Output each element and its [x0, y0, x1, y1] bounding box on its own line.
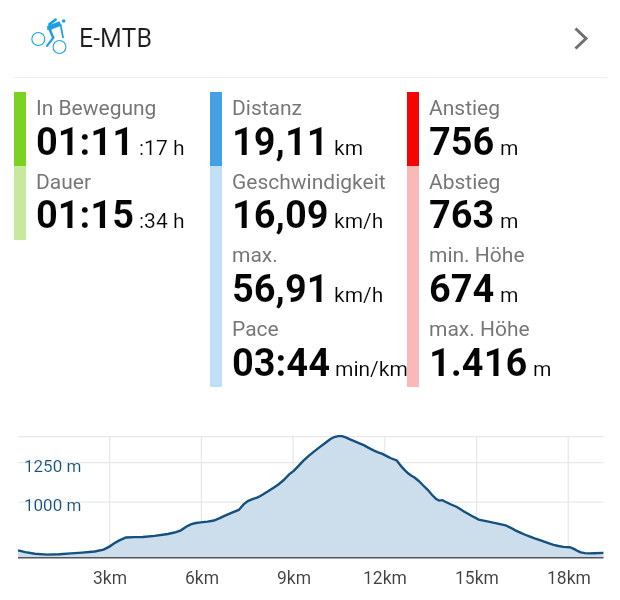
staticText: m — [500, 283, 519, 308]
staticText: Distanz — [232, 96, 303, 121]
button[interactable] — [36, 92, 216, 166]
button[interactable] — [429, 166, 609, 240]
staticText: max. Höhe — [429, 317, 530, 342]
button[interactable] — [232, 313, 412, 387]
staticText: 1250 m — [24, 456, 82, 476]
staticText: 756 — [429, 120, 495, 165]
staticText: max. — [232, 243, 278, 268]
staticText: km/h — [334, 209, 384, 234]
staticText: 1000 m — [24, 495, 82, 515]
staticText: 56,91 — [232, 267, 329, 312]
button[interactable] — [232, 166, 412, 240]
staticText: Geschwindigkeit — [232, 170, 386, 195]
staticText: :17 h — [139, 136, 185, 161]
staticText: m — [533, 357, 552, 382]
staticText: E-MTB — [79, 24, 153, 53]
staticText: :34 h — [139, 209, 185, 234]
button[interactable] — [429, 92, 609, 166]
staticText: 12km — [363, 568, 407, 589]
button[interactable] — [429, 239, 609, 313]
staticText: 9km — [277, 568, 312, 589]
staticText: 18km — [547, 568, 591, 589]
button[interactable] — [232, 239, 412, 313]
staticText: 3km — [93, 568, 128, 589]
staticText: 6km — [185, 568, 220, 589]
staticText: 16,09 — [232, 193, 329, 238]
staticText: 763 — [429, 193, 495, 238]
staticText: 01:15 — [36, 193, 134, 238]
staticText: Abstieg — [429, 170, 501, 195]
staticText: min/km — [335, 357, 408, 382]
button[interactable] — [429, 313, 609, 387]
staticText: 674 — [429, 267, 495, 312]
button[interactable]: E-MTB — [0, 0, 620, 78]
button[interactable] — [36, 166, 216, 240]
staticText: 19,11 — [232, 120, 329, 165]
staticText: m — [500, 136, 519, 161]
staticText: In Bewegung — [36, 96, 157, 121]
staticText: Dauer — [36, 170, 92, 195]
staticText: Anstieg — [429, 96, 501, 121]
staticText: m — [500, 209, 519, 234]
staticText: 15km — [455, 568, 499, 589]
staticText: km — [334, 136, 364, 161]
staticText: 1.416 — [429, 341, 528, 386]
staticText: km/h — [334, 283, 384, 308]
staticText: Pace — [232, 317, 279, 342]
button[interactable]: Details — [569, 26, 593, 50]
staticText: 01:11 — [36, 120, 134, 165]
staticText: 03:44 — [232, 341, 330, 386]
button[interactable] — [232, 92, 412, 166]
staticText: min. Höhe — [429, 243, 525, 268]
